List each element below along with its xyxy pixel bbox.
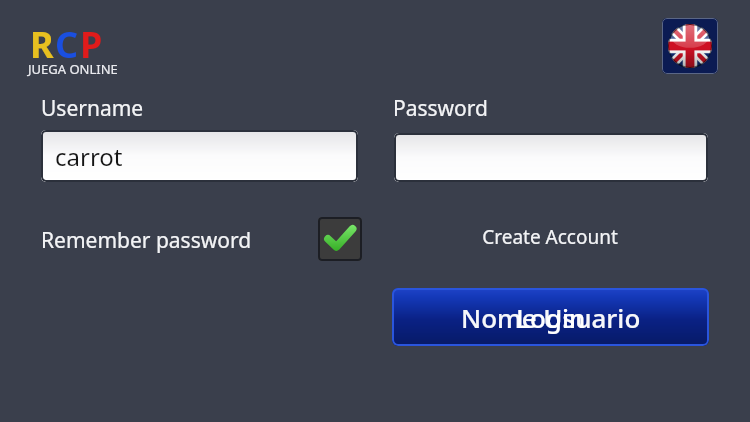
staticText: Username <box>41 94 144 123</box>
button[interactable]: Remember password checkbox <box>318 217 362 261</box>
staticText: C <box>55 20 79 69</box>
button[interactable]: Create Account <box>470 220 630 254</box>
staticText: Nome Usuario <box>461 300 641 335</box>
staticText: JUEGA ONLINE <box>28 60 118 78</box>
button[interactable]: Nome Usuario <box>392 288 709 346</box>
staticText: Password <box>393 94 488 123</box>
staticText: carrot <box>55 140 123 173</box>
button[interactable]: carrot <box>41 130 358 182</box>
button[interactable]: Password <box>394 133 708 182</box>
staticText: Login <box>516 300 586 335</box>
staticText: R <box>30 20 54 69</box>
staticText: Remember password <box>41 226 252 255</box>
staticText: Create Account <box>482 224 618 250</box>
staticText: P <box>80 20 103 69</box>
button[interactable]: Change language <box>662 18 718 74</box>
